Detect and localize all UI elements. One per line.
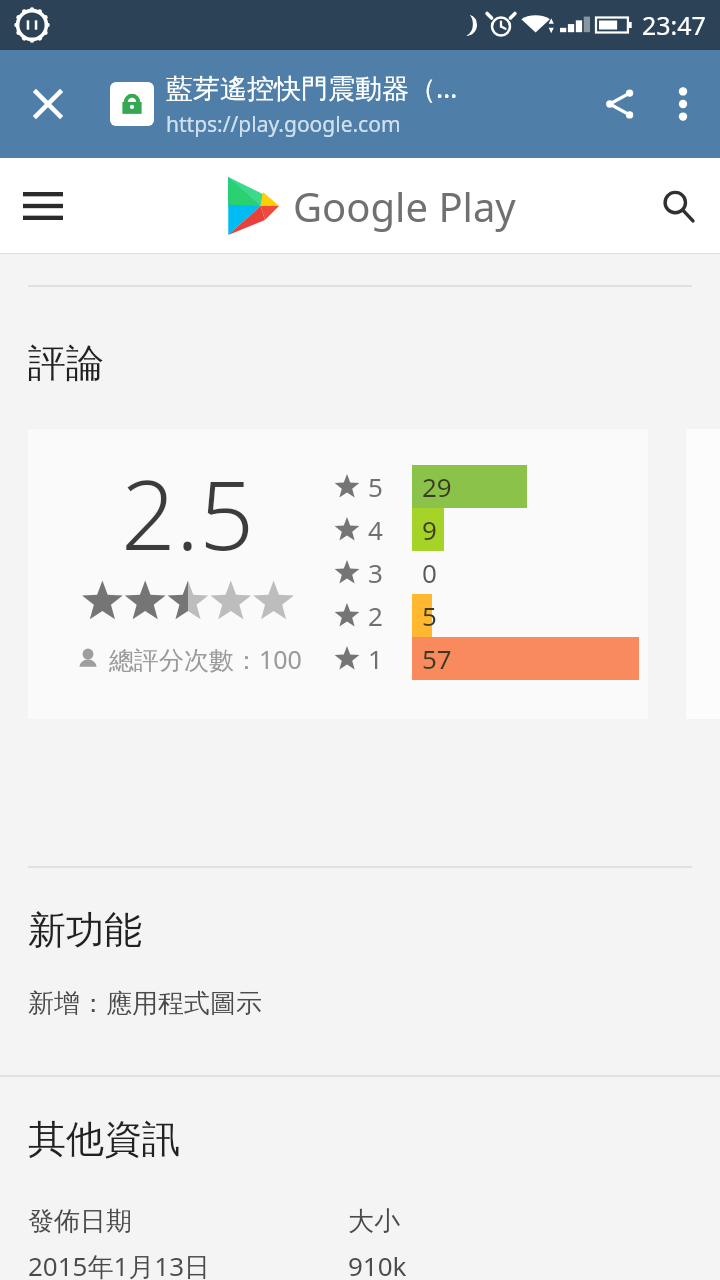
staticText: Google Play (293, 179, 516, 233)
staticText: 新增：應用程式圖示 (28, 987, 262, 1020)
button[interactable]: Share (578, 62, 662, 146)
staticText: 5 (368, 469, 383, 504)
staticText: 其他資訊 (28, 1115, 180, 1163)
staticText: 發佈日期 (28, 1205, 132, 1238)
staticText: 2015年1月13日 (28, 1248, 211, 1280)
staticText: 評論 (28, 339, 104, 387)
staticText: 0 (422, 555, 437, 590)
staticText: 2.5 (121, 447, 255, 578)
button[interactable]: Close (0, 50, 96, 158)
staticText: 1 (368, 641, 383, 676)
staticText: 910k (348, 1248, 407, 1280)
staticText: https://play.google.com (166, 110, 401, 139)
staticText: 57 (422, 641, 452, 676)
staticText: 藍芽遙控快門震動器（… (166, 69, 458, 106)
staticText: 大小 (348, 1205, 400, 1238)
staticText: 3 (368, 555, 383, 590)
button[interactable]: Search (636, 158, 720, 253)
staticText: 5 (422, 598, 437, 633)
staticText: 新功能 (28, 906, 142, 954)
staticText: 2 (368, 598, 383, 633)
button[interactable]: More options (646, 50, 720, 158)
staticText: 29 (422, 469, 452, 504)
staticText: 23:47 (642, 8, 706, 42)
staticText: 總評分次數：100 (109, 642, 302, 676)
button[interactable]: 2.5 (28, 429, 648, 719)
staticText: 9 (422, 512, 437, 547)
staticText: 4 (368, 512, 383, 547)
button[interactable]: Open navigation menu (0, 158, 86, 253)
